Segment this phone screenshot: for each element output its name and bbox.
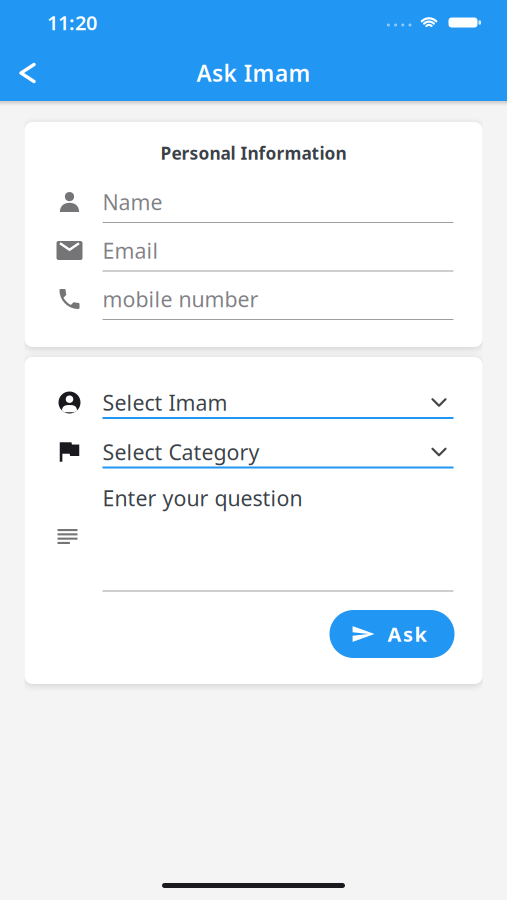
button[interactable]: Back bbox=[0, 45, 52, 101]
button[interactable]: Select Imam bbox=[24, 392, 482, 419]
staticText: Select Imam bbox=[102, 388, 227, 417]
staticText: 11:20 bbox=[47, 9, 97, 36]
button[interactable]: Ask bbox=[329, 610, 454, 658]
button[interactable]: Email bbox=[24, 240, 482, 271]
staticText: Ask bbox=[387, 621, 426, 647]
staticText: Ask Imam bbox=[196, 58, 311, 88]
staticText: mobile number bbox=[102, 285, 258, 313]
staticText: Select Category bbox=[102, 438, 259, 466]
staticText: Name bbox=[102, 188, 162, 216]
button[interactable]: Select Category bbox=[24, 441, 482, 468]
staticText: Personal Information bbox=[160, 141, 346, 164]
staticText: Enter your question bbox=[102, 484, 302, 512]
button[interactable]: Name bbox=[24, 192, 482, 223]
button[interactable]: mobile number bbox=[24, 289, 482, 320]
staticText: Email bbox=[102, 236, 158, 265]
